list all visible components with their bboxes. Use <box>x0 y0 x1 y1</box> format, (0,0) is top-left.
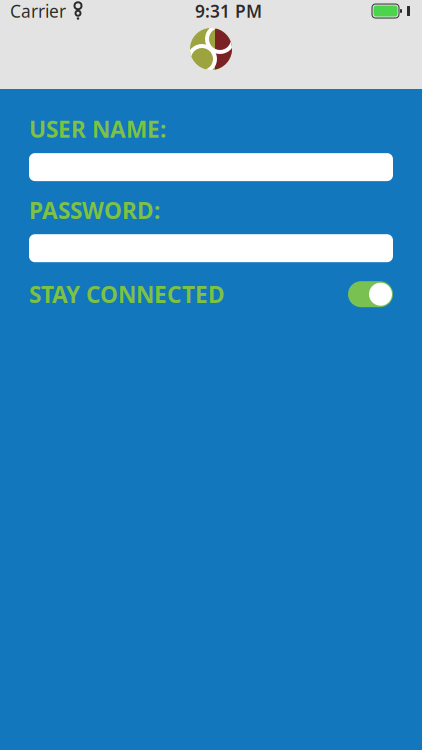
staticText: USER NAME: <box>29 114 166 144</box>
staticText: 9:31 PM <box>195 0 262 22</box>
button[interactable] <box>29 234 393 262</box>
button[interactable]: Stay connected <box>348 281 393 307</box>
staticText: PASSWORD: <box>29 195 160 225</box>
button[interactable] <box>29 153 393 181</box>
staticText: STAY CONNECTED <box>29 279 225 309</box>
staticText: Carrier <box>10 0 66 22</box>
